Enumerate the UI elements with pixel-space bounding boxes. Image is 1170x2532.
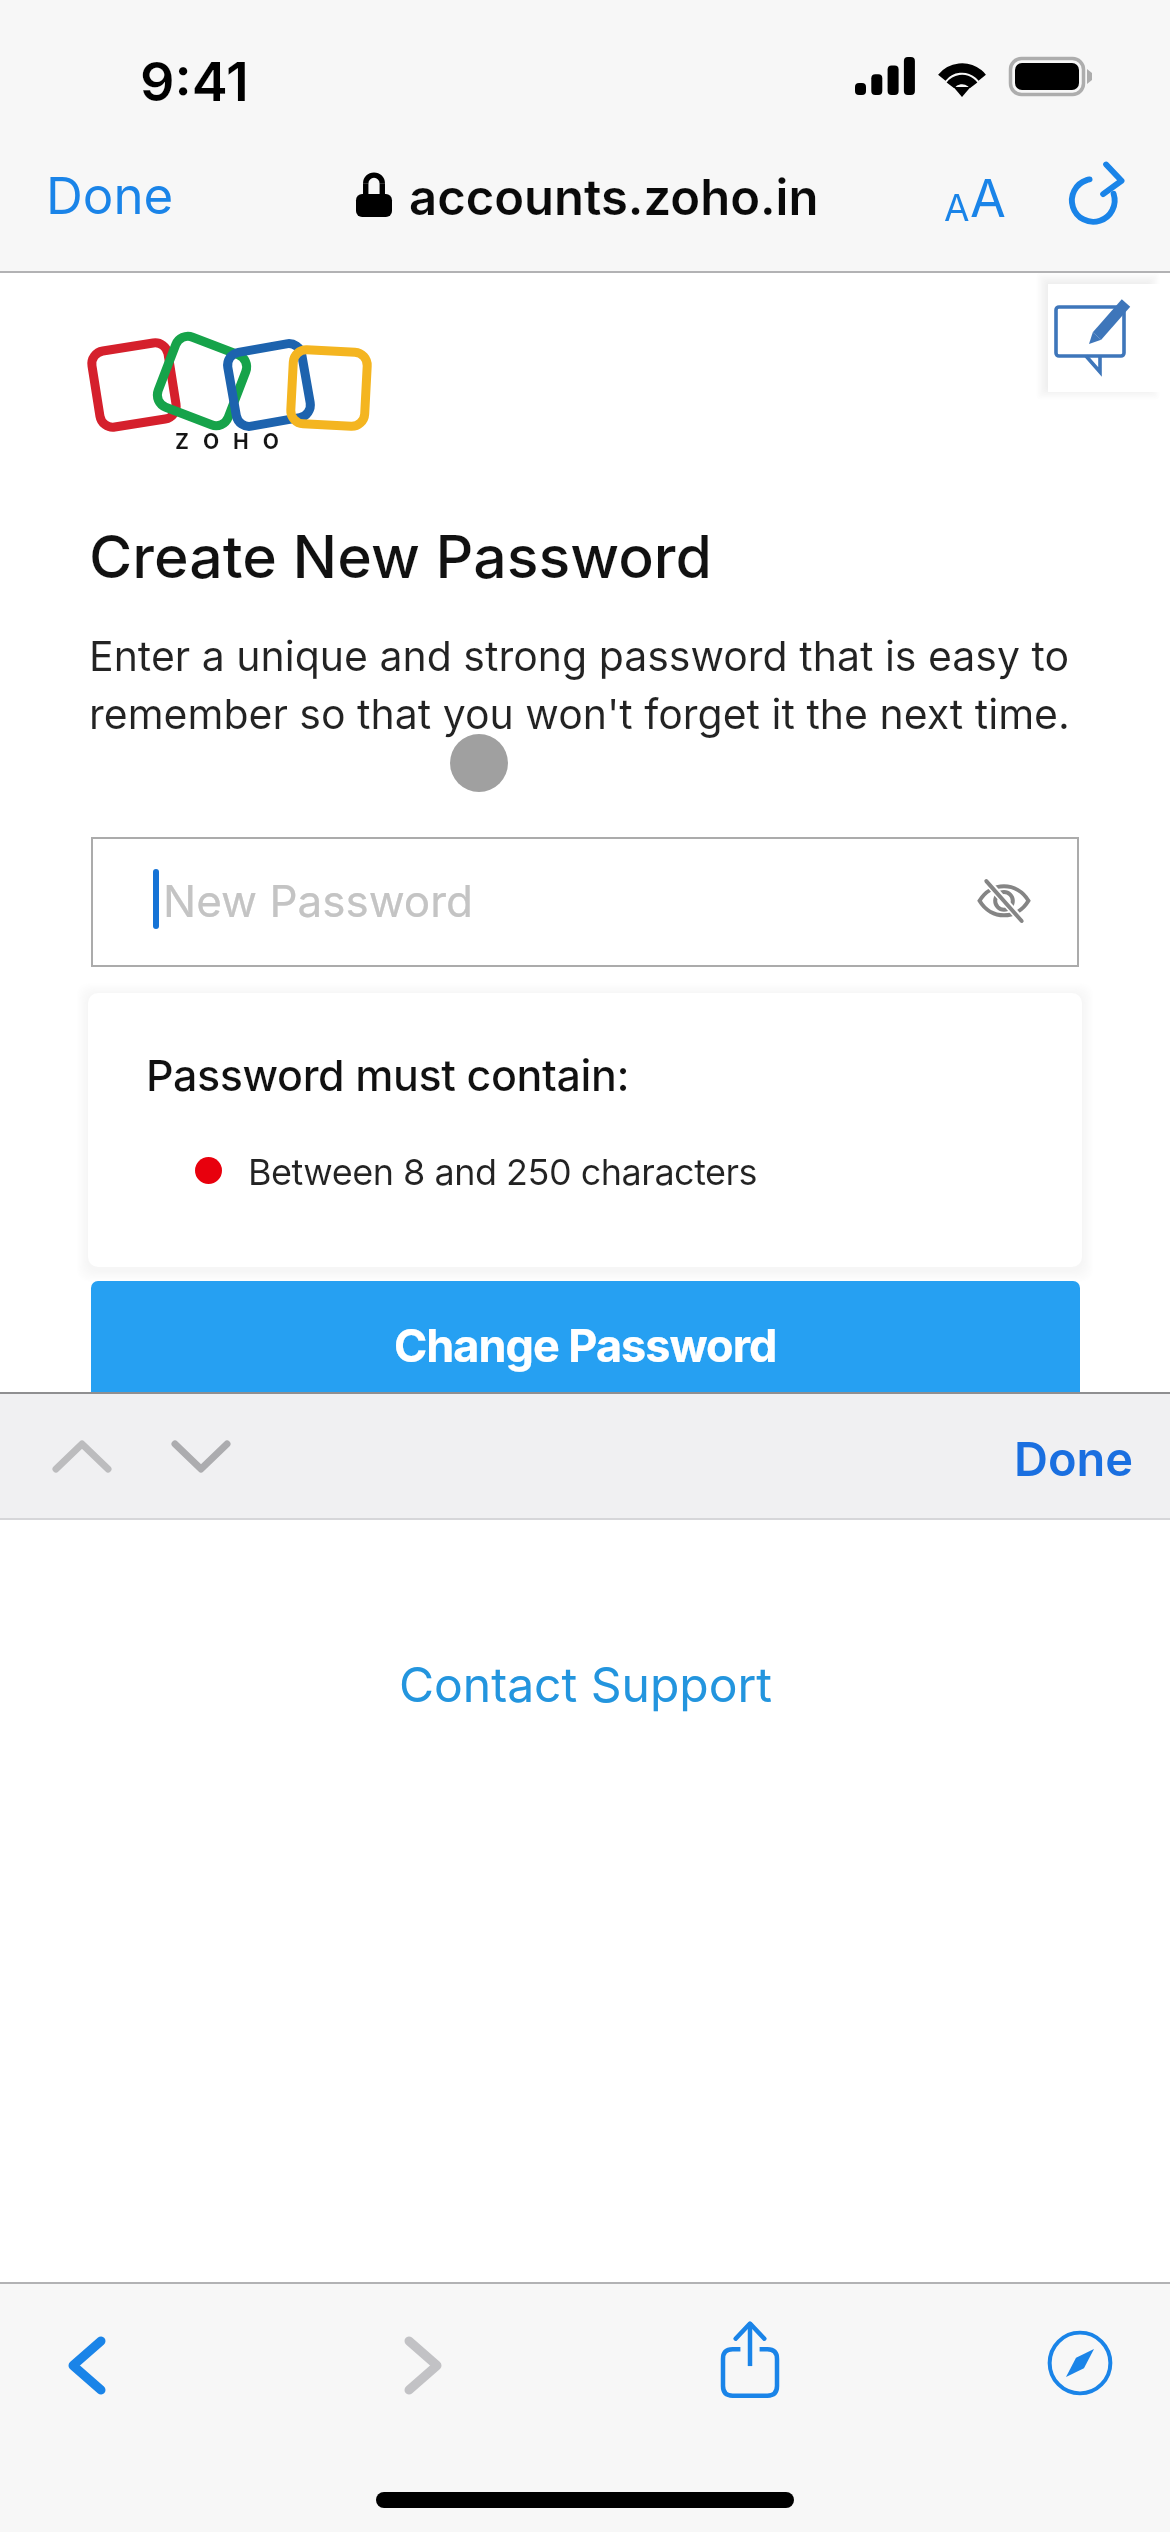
staticText: Done <box>46 165 174 227</box>
staticText: 9:41 <box>140 49 249 114</box>
button[interactable]: Previous field <box>27 1408 137 1504</box>
staticText: accounts.zoho.in <box>409 168 819 227</box>
button[interactable]: Back <box>27 2305 147 2425</box>
button[interactable]: Reload page <box>1052 148 1142 238</box>
staticText: Create New Password <box>89 521 712 592</box>
staticText: A <box>970 167 1006 230</box>
button[interactable]: Done <box>994 1414 1154 1503</box>
button[interactable]: Share <box>690 2300 810 2420</box>
button[interactable]: Contact Support <box>369 1641 802 1727</box>
staticText: Change Password <box>394 1318 777 1372</box>
button[interactable]: Feedback <box>1048 284 1170 392</box>
staticText: A <box>944 185 970 230</box>
staticText: New Password <box>163 874 474 927</box>
button[interactable]: New Password <box>91 837 1079 967</box>
button[interactable]: Forward <box>363 2305 483 2425</box>
button[interactable]: Change Password <box>91 1281 1080 1461</box>
button[interactable]: Done <box>26 151 194 241</box>
staticText: Enter a unique and strong password that … <box>89 631 1084 739</box>
button[interactable]: Text size <box>928 147 1022 250</box>
staticText: Contact Support <box>399 1655 772 1713</box>
button[interactable]: Open in Safari <box>1020 2303 1140 2423</box>
staticText: Done <box>1014 1430 1134 1487</box>
staticText: Password must contain: <box>146 1049 630 1101</box>
staticText: Between 8 and 250 characters <box>248 1150 758 1194</box>
button[interactable]: Next field <box>146 1408 256 1504</box>
staticText: Z O H O <box>175 429 284 454</box>
